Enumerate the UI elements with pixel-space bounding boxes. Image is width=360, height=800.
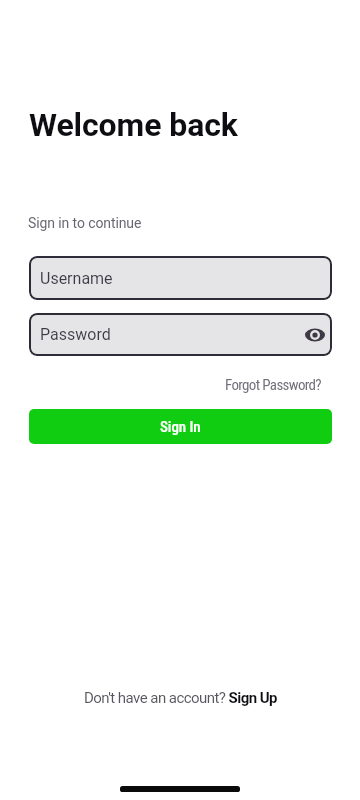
button[interactable]: Sign In [29,409,332,444]
button[interactable]: Password [29,313,332,356]
staticText: Sign in to continue [28,215,142,231]
staticText: Sign In [160,418,201,436]
button[interactable] [302,322,328,348]
staticText: Username [40,269,113,288]
button[interactable]: Username [29,256,332,300]
button[interactable]: Don't have an account? Sign Up [84,689,277,707]
staticText: Password [40,325,111,344]
staticText: Welcome back [29,106,238,144]
button[interactable]: Forgot Password? [225,376,322,394]
